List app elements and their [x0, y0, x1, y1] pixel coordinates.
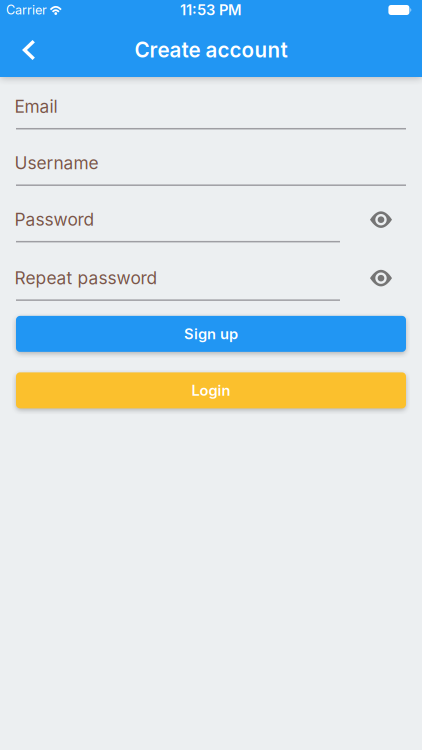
button[interactable]: Sign up — [16, 316, 406, 352]
button[interactable]: Username — [16, 152, 406, 186]
button[interactable] — [370, 209, 392, 228]
button[interactable] — [0, 39, 35, 60]
staticText: 11:53 PM — [180, 1, 242, 19]
staticText: Email — [14, 96, 57, 117]
button[interactable] — [370, 267, 392, 286]
staticText: Create account — [134, 37, 287, 62]
staticText: Login — [191, 381, 230, 399]
staticText: Repeat password — [14, 267, 157, 288]
button[interactable]: Repeat password — [16, 267, 340, 301]
button[interactable]: Password — [16, 209, 340, 242]
staticText: Sign up — [184, 325, 238, 343]
staticText: Password — [14, 209, 94, 230]
button[interactable]: Login — [16, 372, 406, 408]
staticText: Username — [14, 152, 98, 173]
button[interactable]: Email — [16, 96, 406, 129]
staticText: Carrier — [6, 2, 47, 18]
